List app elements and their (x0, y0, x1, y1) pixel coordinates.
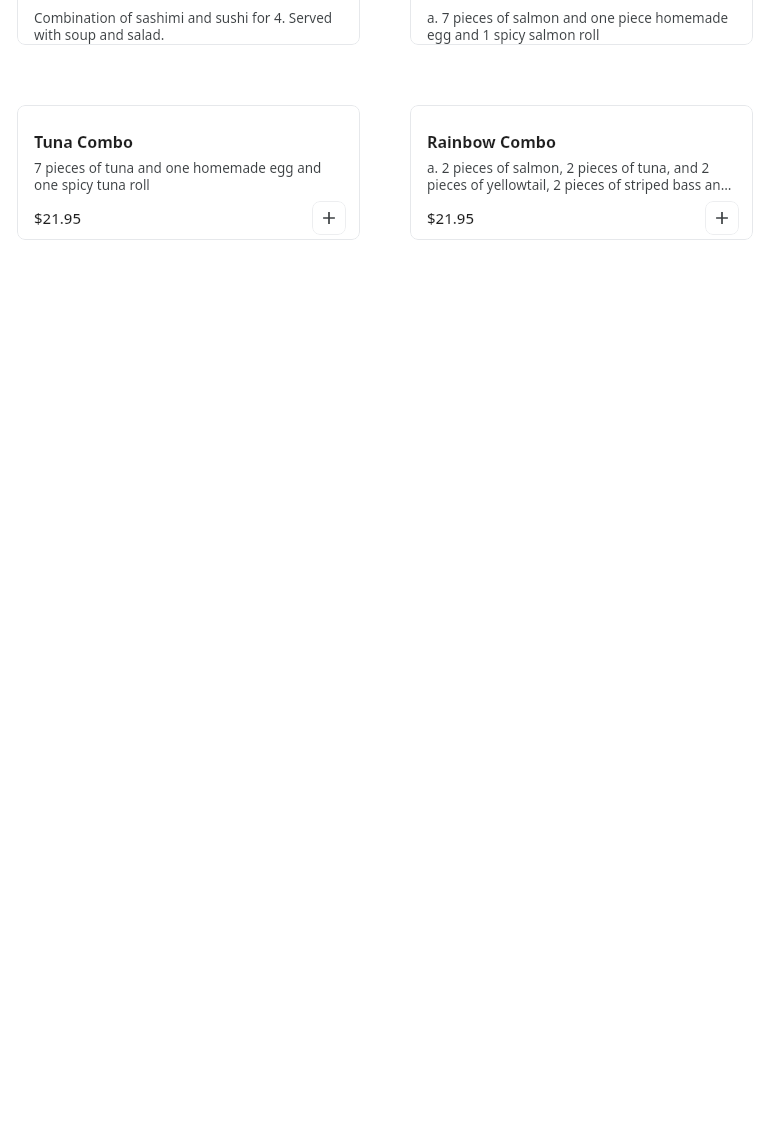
staticText: Combination of sashimi and sushi for 4. … (34, 9, 346, 44)
staticText: 7 pieces of tuna and one homemade egg an… (34, 159, 346, 194)
staticText: Rainbow Combo (427, 131, 556, 153)
staticText: $21.95 (427, 208, 474, 228)
staticText: a. 2 pieces of salmon, 2 pieces of tuna,… (427, 159, 739, 194)
button[interactable]: Rainbow Combo (410, 105, 753, 240)
staticText: a. 7 pieces of salmon and one piece home… (427, 9, 739, 44)
button[interactable]: Add item (312, 201, 346, 235)
button[interactable]: Sashimi and Sushi for 4 (17, 0, 360, 45)
button[interactable]: Salmon Combo (410, 0, 753, 45)
button[interactable]: Tuna Combo (17, 105, 360, 240)
staticText: $21.95 (34, 208, 81, 228)
staticText: Tuna Combo (34, 131, 133, 153)
button[interactable]: Add item (705, 201, 739, 235)
